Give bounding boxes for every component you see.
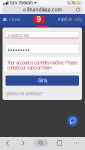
staticText: Giriş <box>74 17 82 22</box>
staticText: Turk Telekom <box>9 1 33 5</box>
button[interactable]: Support chat <box>67 115 78 126</box>
button[interactable]: Menu <box>1 15 8 23</box>
button[interactable]: Tabs <box>54 139 65 147</box>
button[interactable]: Search <box>34 139 48 147</box>
staticText: Your account is currently inactive. Plea… <box>7 60 77 70</box>
staticText: 9handikap.com <box>27 7 62 12</box>
button[interactable]: Canlı <box>8 15 21 24</box>
button[interactable]: Giriş <box>5 75 79 86</box>
staticText: Kullanıcı adı <box>8 33 29 38</box>
staticText: Canlı <box>11 17 20 22</box>
button[interactable]: Giriş <box>73 15 83 24</box>
staticText: Giriş <box>38 78 47 83</box>
button[interactable]: Back <box>3 138 12 148</box>
staticText: Şifrenizi mi unuttunuz? <box>6 92 43 96</box>
button[interactable]: More <box>71 139 82 147</box>
button[interactable]: Şifrenizi mi unuttunuz? <box>5 91 44 97</box>
button[interactable]: Forward <box>18 138 28 148</box>
button[interactable]: 9handikap.com <box>0 5 85 14</box>
button[interactable]: Kayıt Ol <box>57 15 73 24</box>
staticText: %76 <box>67 1 75 5</box>
staticText: Kayıt Ol <box>58 17 72 22</box>
staticText: 9 <box>36 15 41 24</box>
button[interactable]: Home <box>33 16 44 23</box>
